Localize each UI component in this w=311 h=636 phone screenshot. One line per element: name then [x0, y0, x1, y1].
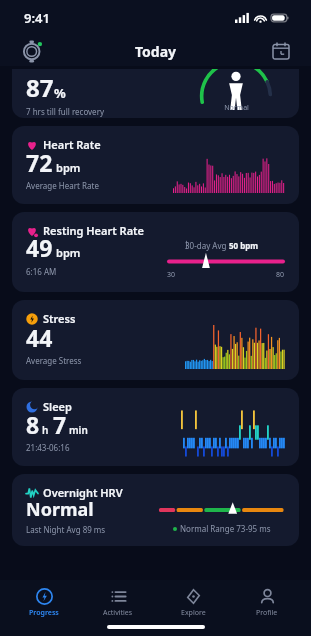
- staticText: 9:41: [24, 9, 50, 27]
- staticText: %: [54, 84, 66, 102]
- staticText: Today: [135, 42, 177, 61]
- button[interactable]: Explore: [162, 586, 224, 620]
- staticText: Stress: [43, 311, 76, 326]
- staticText: 6:16 AM: [26, 266, 57, 277]
- button[interactable]: Watch status: [20, 38, 46, 64]
- staticText: Average Stress: [26, 355, 82, 366]
- staticText: Normal: [224, 103, 249, 113]
- staticText: Heart Rate: [43, 137, 101, 152]
- button[interactable]: Overnight HRV: [12, 474, 299, 546]
- button[interactable]: Resting Heart Rate: [12, 212, 299, 292]
- button[interactable]: Sleep: [12, 388, 299, 466]
- staticText: Average Heart Rate: [26, 180, 99, 191]
- staticText: 72: [26, 147, 53, 178]
- staticText: 49: [26, 232, 53, 263]
- staticText: 21:43-06:16: [26, 442, 70, 453]
- button[interactable]: Stress: [12, 300, 299, 380]
- staticText: 7 hrs till full recovery: [26, 106, 105, 117]
- staticText: h: [42, 423, 49, 437]
- button[interactable]: Profile: [236, 586, 298, 620]
- staticText: 80: [276, 270, 285, 280]
- button[interactable]: Progress: [13, 586, 75, 620]
- staticText: Resting Heart Rate: [43, 223, 144, 238]
- button[interactable]: 87: [12, 69, 299, 118]
- staticText: 87: [26, 71, 54, 104]
- staticText: Normal Range 73-95 ms: [180, 523, 271, 534]
- staticText: Progress: [29, 608, 59, 618]
- button[interactable]: Activities: [87, 586, 149, 620]
- staticText: 7: [53, 409, 67, 440]
- button[interactable]: Calendar: [271, 41, 291, 61]
- staticText: 44: [26, 322, 53, 353]
- staticText: 50 bpm: [229, 240, 259, 251]
- staticText: Activities: [103, 608, 133, 618]
- staticText: 8: [26, 409, 40, 440]
- staticText: Overnight HRV: [43, 485, 123, 500]
- staticText: min: [69, 423, 88, 437]
- staticText: 30-day Avg: [185, 240, 229, 251]
- staticText: bpm: [56, 160, 81, 175]
- staticText: bpm: [56, 245, 81, 260]
- staticText: 30: [167, 270, 176, 280]
- staticText: Normal: [26, 497, 94, 522]
- button[interactable]: Heart Rate: [12, 126, 299, 204]
- staticText: Sleep: [43, 399, 72, 414]
- staticText: Last Night Avg 89 ms: [26, 524, 106, 535]
- staticText: Profile: [256, 608, 278, 618]
- staticText: Explore: [181, 608, 206, 618]
